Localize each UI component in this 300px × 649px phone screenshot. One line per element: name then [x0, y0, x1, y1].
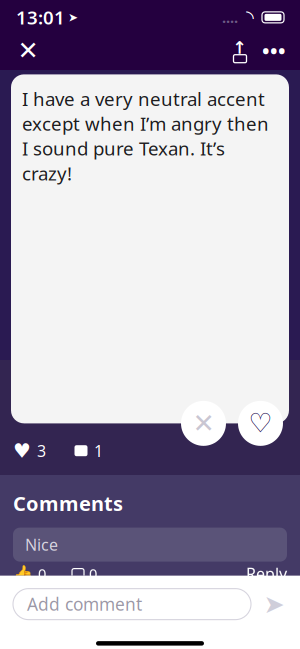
staticText: Reply — [246, 563, 287, 584]
staticText: .... — [222, 8, 238, 27]
staticText: Comments — [13, 490, 123, 517]
button[interactable]: Reply — [246, 563, 287, 584]
staticText: ✕ — [192, 408, 214, 438]
staticText: ♥ — [13, 439, 31, 462]
staticText: ◝ — [246, 6, 254, 29]
staticText: ••• — [262, 37, 286, 64]
button[interactable]: 1 comment — [74, 436, 103, 465]
button[interactable]: Add comment — [13, 589, 251, 620]
staticText: 0 — [89, 564, 97, 583]
staticText: ✕ — [17, 36, 38, 65]
staticText: 13:01 — [16, 5, 65, 30]
staticText: ➤ — [263, 590, 284, 619]
button[interactable]: Share — [223, 33, 257, 67]
button[interactable]: Send comment — [261, 591, 287, 617]
staticText: 👍 — [13, 564, 33, 583]
button[interactable]: More options — [257, 33, 291, 67]
staticText: 0 — [38, 564, 46, 583]
button[interactable]: Skip — [181, 401, 226, 446]
staticText: I have a very neutral accent except when… — [22, 86, 269, 186]
staticText: ➤ — [68, 11, 78, 24]
button[interactable]: Reply count — [72, 564, 97, 583]
button[interactable]: Like — [238, 401, 283, 446]
staticText: 3 — [37, 440, 46, 461]
staticText: ♡ — [248, 408, 272, 438]
button[interactable]: 3 likes — [13, 435, 46, 466]
button[interactable]: Close — [9, 33, 47, 67]
button[interactable]: Like comment — [13, 564, 46, 583]
staticText: 1 — [94, 440, 103, 461]
staticText: ↑ — [232, 38, 247, 58]
staticText: Nice — [25, 534, 58, 555]
staticText: Add comment — [27, 593, 142, 616]
